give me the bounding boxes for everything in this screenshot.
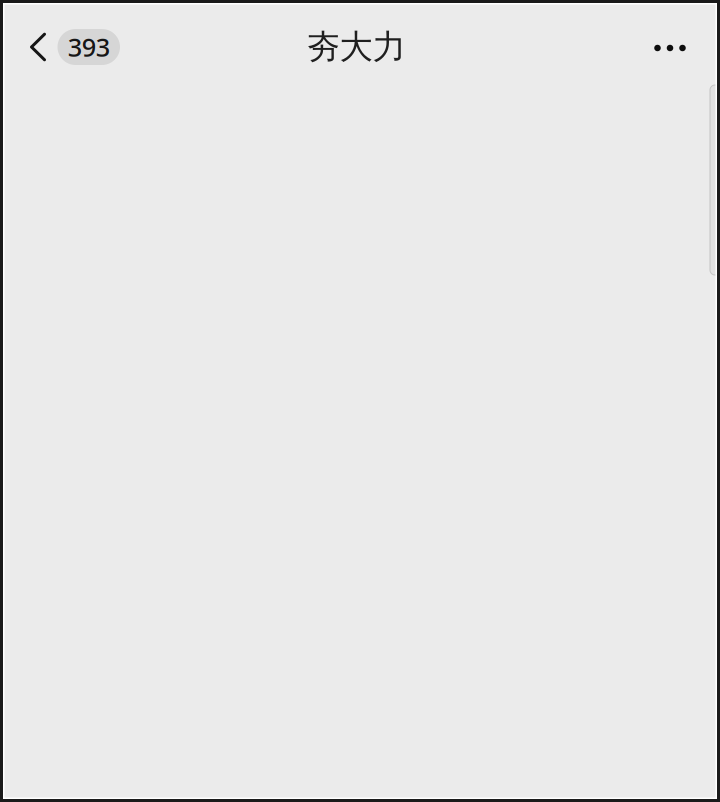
staticText: 393 — [68, 30, 110, 64]
button[interactable]: Back, 393 unread — [0, 16, 132, 78]
button[interactable]: More options — [642, 19, 698, 75]
staticText: 夯大力 — [306, 26, 405, 67]
